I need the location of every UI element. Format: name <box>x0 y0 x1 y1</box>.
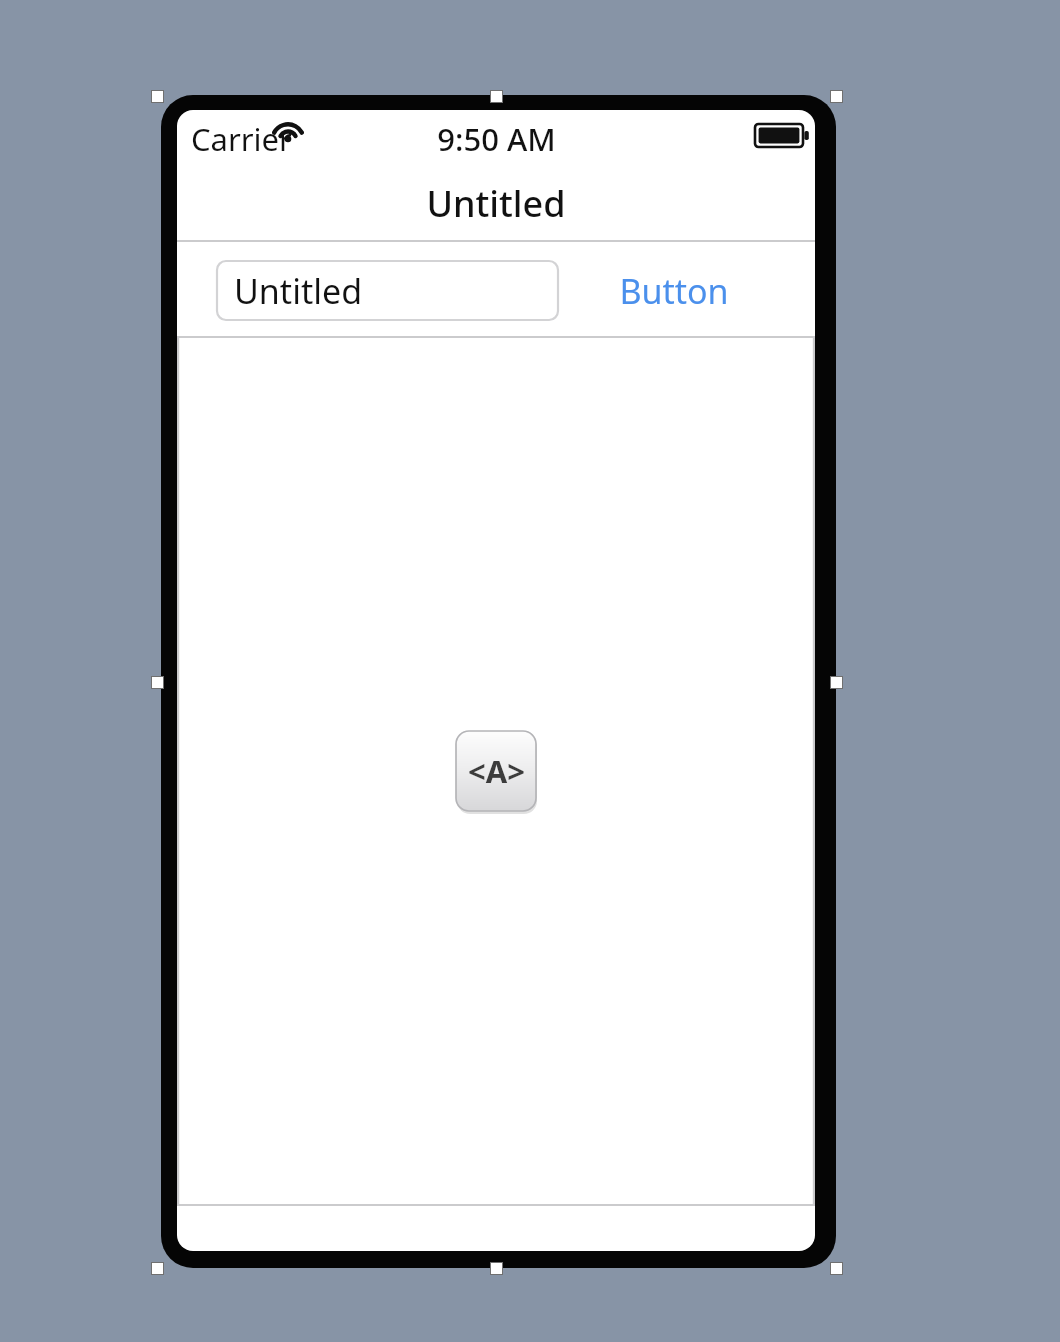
staticText: Button <box>619 268 729 314</box>
staticText: Carrier <box>191 118 292 160</box>
button[interactable]: Placeholder image <box>456 731 536 811</box>
staticText: Untitled <box>426 179 566 228</box>
button[interactable]: Button <box>598 263 750 319</box>
staticText: <A> <box>468 750 525 792</box>
staticText: 9:50 AM <box>437 118 556 158</box>
button[interactable]: Untitled <box>217 261 558 320</box>
staticText: Untitled <box>234 268 363 314</box>
